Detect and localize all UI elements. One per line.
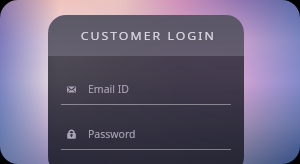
staticText: CUSTOMER LOGIN <box>81 29 216 43</box>
button[interactable]: Password <box>48 125 244 149</box>
staticText: Email ID <box>88 82 129 96</box>
button[interactable]: Email <box>48 80 244 104</box>
button[interactable]: CUSTOMER LOGIN <box>48 15 244 56</box>
other: Password <box>67 128 76 141</box>
other: Email <box>67 83 76 96</box>
staticText: Password <box>88 127 136 141</box>
